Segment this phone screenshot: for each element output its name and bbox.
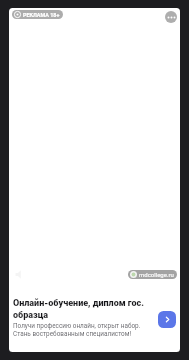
button[interactable]: РЕКЛАМА 18+ bbox=[12, 10, 63, 19]
staticText: mdcollege.ru bbox=[139, 271, 174, 278]
button[interactable]: More options bbox=[165, 11, 177, 23]
staticText: РЕКЛАМА 18+ bbox=[23, 12, 60, 18]
staticText: Онлайн-обучение, диплом гос. образца bbox=[13, 298, 144, 320]
staticText: Получи профессию онлайн, открыт набор. С… bbox=[13, 322, 141, 338]
button[interactable]: Open offer bbox=[158, 311, 176, 328]
button[interactable]: mdcollege.ru bbox=[128, 270, 177, 279]
